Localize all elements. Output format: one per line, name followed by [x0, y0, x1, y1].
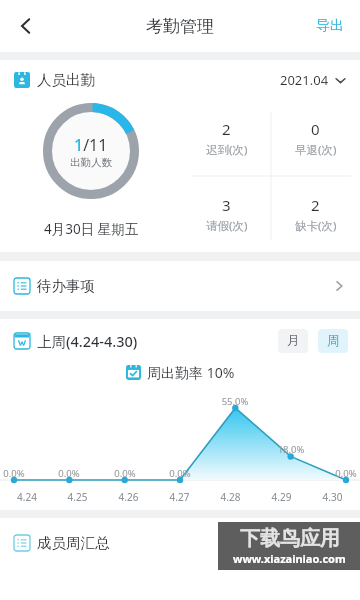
- staticText: 1/11: [74, 134, 108, 156]
- staticText: 4月30日 星期五: [44, 220, 139, 238]
- staticText: 4.28: [205, 490, 256, 504]
- staticText: 4.30: [307, 490, 358, 504]
- staticText: 2: [311, 195, 320, 215]
- staticText: 2: [222, 119, 231, 139]
- staticText: 导出: [316, 17, 344, 35]
- staticText: 早退(次): [295, 142, 337, 158]
- staticText: 出勤人数: [70, 156, 112, 169]
- staticText: 周: [327, 333, 340, 349]
- staticText: 0.0%: [0, 467, 31, 480]
- button[interactable]: 月: [278, 329, 308, 353]
- staticText: 上周(4.24-4.30): [37, 331, 138, 351]
- staticText: 0.0%: [52, 467, 86, 480]
- button[interactable]: 2: [182, 100, 271, 176]
- staticText: 缺卡(次): [295, 218, 337, 234]
- staticText: 成员周汇总: [37, 534, 110, 552]
- staticText: 0.0%: [108, 467, 142, 480]
- button[interactable]: 待办事项: [0, 261, 360, 311]
- staticText: 0.0%: [163, 467, 197, 480]
- button[interactable]: 周: [318, 329, 348, 353]
- button[interactable]: 0: [271, 100, 360, 176]
- staticText: 4.29: [256, 490, 307, 504]
- button[interactable]: 2: [271, 176, 360, 252]
- staticText: 0: [311, 119, 320, 139]
- staticText: 18.0%: [274, 443, 308, 456]
- staticText: 待办事项: [37, 277, 95, 295]
- staticText: 4.26: [103, 490, 154, 504]
- staticText: 4.25: [52, 490, 103, 504]
- staticText: www.xiazainiao.com: [233, 551, 346, 566]
- staticText: 人员出勤: [37, 71, 95, 89]
- staticText: 2021.04: [280, 71, 329, 89]
- staticText: 4.27: [154, 490, 205, 504]
- staticText: 迟到(次): [206, 142, 248, 158]
- staticText: 3: [222, 195, 231, 215]
- staticText: 周出勤率 10%: [147, 363, 235, 382]
- staticText: 55.0%: [218, 395, 252, 408]
- button[interactable]: 2021.04: [280, 65, 346, 95]
- button[interactable]: Back: [4, 4, 48, 48]
- staticText: 月: [287, 333, 300, 349]
- staticText: 下载鸟应用: [240, 526, 340, 551]
- staticText: 4.24: [2, 490, 52, 504]
- button[interactable]: 导出: [310, 7, 350, 45]
- staticText: 0.0%: [329, 467, 360, 480]
- button[interactable]: 成员周汇总: [0, 518, 360, 568]
- button[interactable]: 3: [182, 176, 271, 252]
- staticText: 考勤管理: [146, 16, 214, 37]
- staticText: 请假(次): [206, 218, 248, 234]
